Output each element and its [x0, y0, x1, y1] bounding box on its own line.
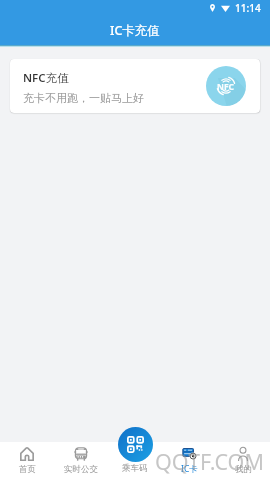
staticText: 乘车码	[122, 463, 148, 474]
button[interactable]: 实时公交	[54, 442, 108, 479]
staticText: 我的	[235, 464, 252, 475]
staticText: 11:14	[235, 1, 261, 15]
button[interactable]: 乘车码	[118, 427, 153, 462]
staticText: 实时公交	[64, 464, 98, 475]
staticText: IC卡充值	[110, 22, 160, 39]
staticText: IC卡	[181, 463, 198, 475]
staticText: 充卡不用跑，一贴马上好	[23, 91, 144, 105]
staticText: QQTF.COM	[155, 447, 264, 476]
button[interactable]: IC卡	[162, 442, 216, 479]
button[interactable]: NFC充值	[10, 59, 260, 113]
button[interactable]: 首页	[0, 442, 54, 479]
staticText: NFC充值	[23, 70, 69, 86]
staticText: 首页	[19, 464, 36, 475]
staticText: NFC	[217, 81, 235, 93]
button[interactable]: 我的	[216, 442, 270, 479]
